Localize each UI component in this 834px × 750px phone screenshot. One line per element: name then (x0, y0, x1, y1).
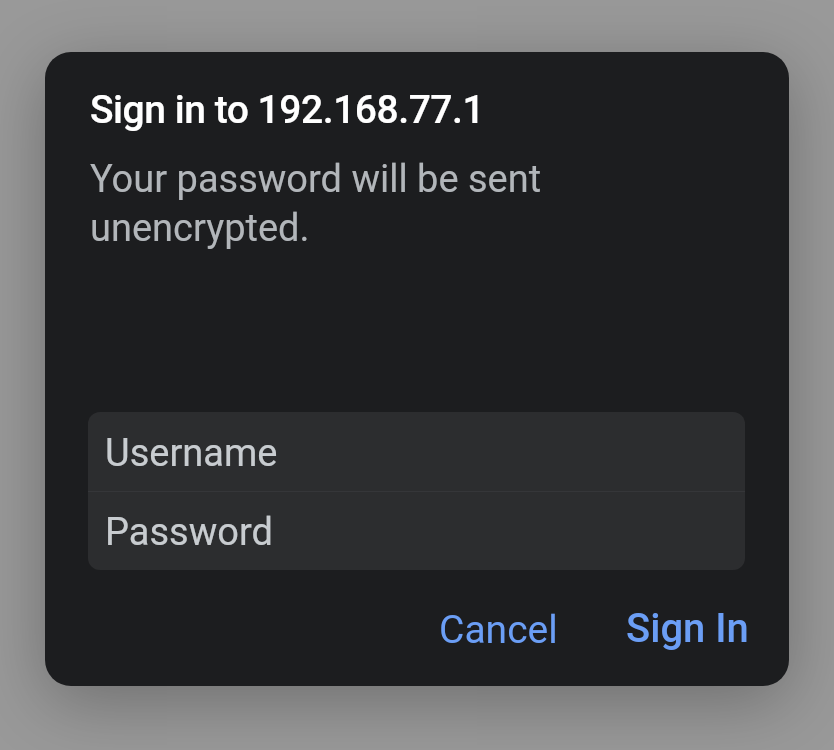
staticText: Username (105, 431, 278, 476)
staticText: Password (105, 510, 273, 555)
staticText: Sign in to 192.168.77.1 (90, 87, 485, 133)
button[interactable]: Sign In (611, 597, 764, 659)
staticText: Sign In (626, 605, 749, 652)
button[interactable]: Username (88, 412, 745, 491)
staticText: Cancel (439, 607, 558, 653)
button[interactable]: Cancel (424, 599, 573, 661)
staticText: Your password will be sent unencrypted. (90, 153, 570, 251)
button[interactable]: Password (88, 492, 745, 570)
